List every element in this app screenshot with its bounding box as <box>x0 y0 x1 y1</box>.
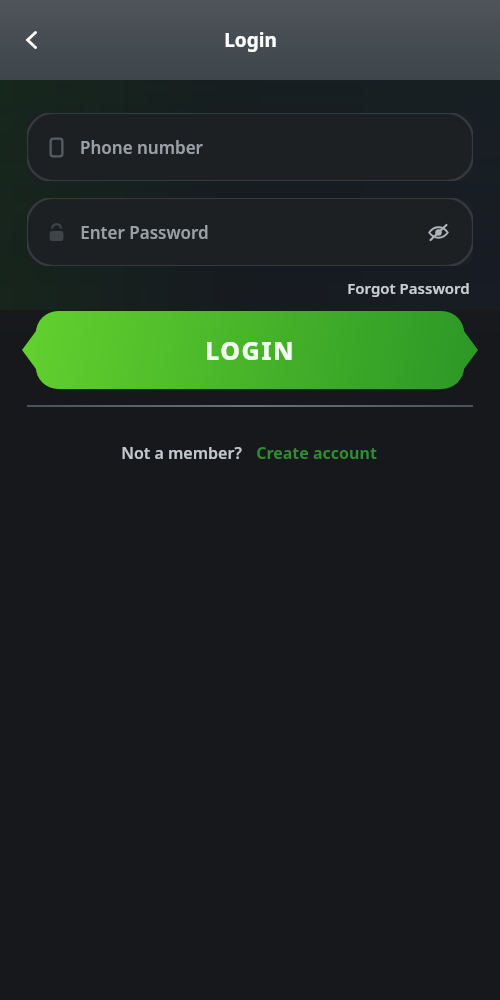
button[interactable]: Phone number <box>27 113 473 181</box>
button[interactable]: Toggle password visibility <box>423 217 453 247</box>
button[interactable]: Back <box>8 16 56 64</box>
button[interactable]: Forgot Password <box>344 275 473 301</box>
button[interactable]: Enter Password <box>27 198 473 266</box>
staticText: Create account <box>256 442 377 464</box>
staticText: Not a member? <box>121 442 242 464</box>
staticText: LOGIN <box>205 333 295 367</box>
staticText: Login <box>224 27 277 53</box>
button[interactable]: Create account <box>254 439 379 467</box>
button[interactable]: LOGIN <box>22 311 478 389</box>
staticText: Enter Password <box>80 221 209 244</box>
staticText: Forgot Password <box>347 278 470 298</box>
staticText: Phone number <box>80 136 203 159</box>
